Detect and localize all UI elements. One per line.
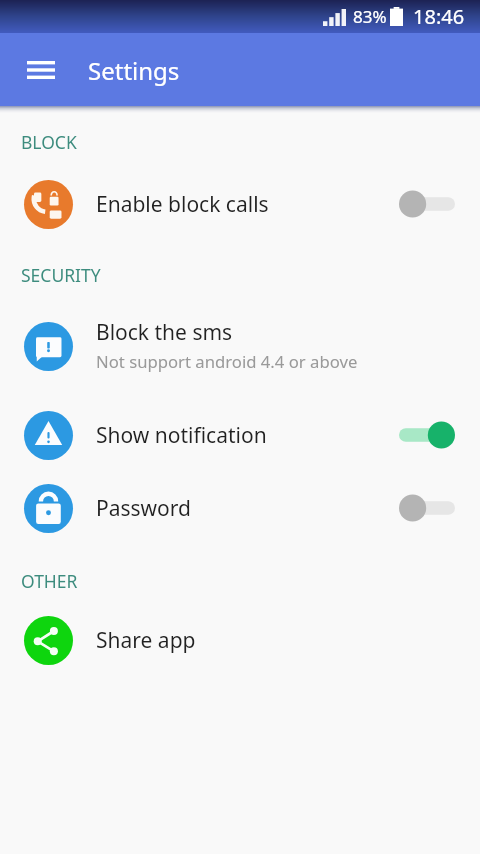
button[interactable]: Enable block calls toggle: [386, 182, 456, 226]
staticText: Show notification: [96, 421, 267, 450]
button[interactable]: Open navigation menu: [17, 46, 65, 94]
staticText: Block the sms: [96, 318, 233, 347]
staticText: OTHER: [21, 569, 78, 593]
staticText: Not support android 4.4 or above: [96, 350, 358, 373]
button[interactable]: Enable block calls: [0, 168, 480, 240]
button[interactable]: Password toggle: [386, 486, 456, 530]
staticText: Enable block calls: [96, 190, 269, 219]
button[interactable]: Block the sms: [0, 310, 480, 382]
staticText: Password: [96, 494, 191, 523]
staticText: Settings: [88, 54, 180, 87]
staticText: 83%: [353, 5, 387, 28]
button[interactable]: Share app: [0, 604, 480, 676]
staticText: SECURITY: [21, 263, 101, 287]
button[interactable]: Show notification toggle: [386, 413, 456, 457]
staticText: 18:46: [413, 3, 465, 30]
staticText: Share app: [96, 626, 196, 655]
staticText: BLOCK: [21, 130, 77, 154]
button[interactable]: Show notification: [0, 399, 480, 471]
button[interactable]: Password: [0, 472, 480, 544]
